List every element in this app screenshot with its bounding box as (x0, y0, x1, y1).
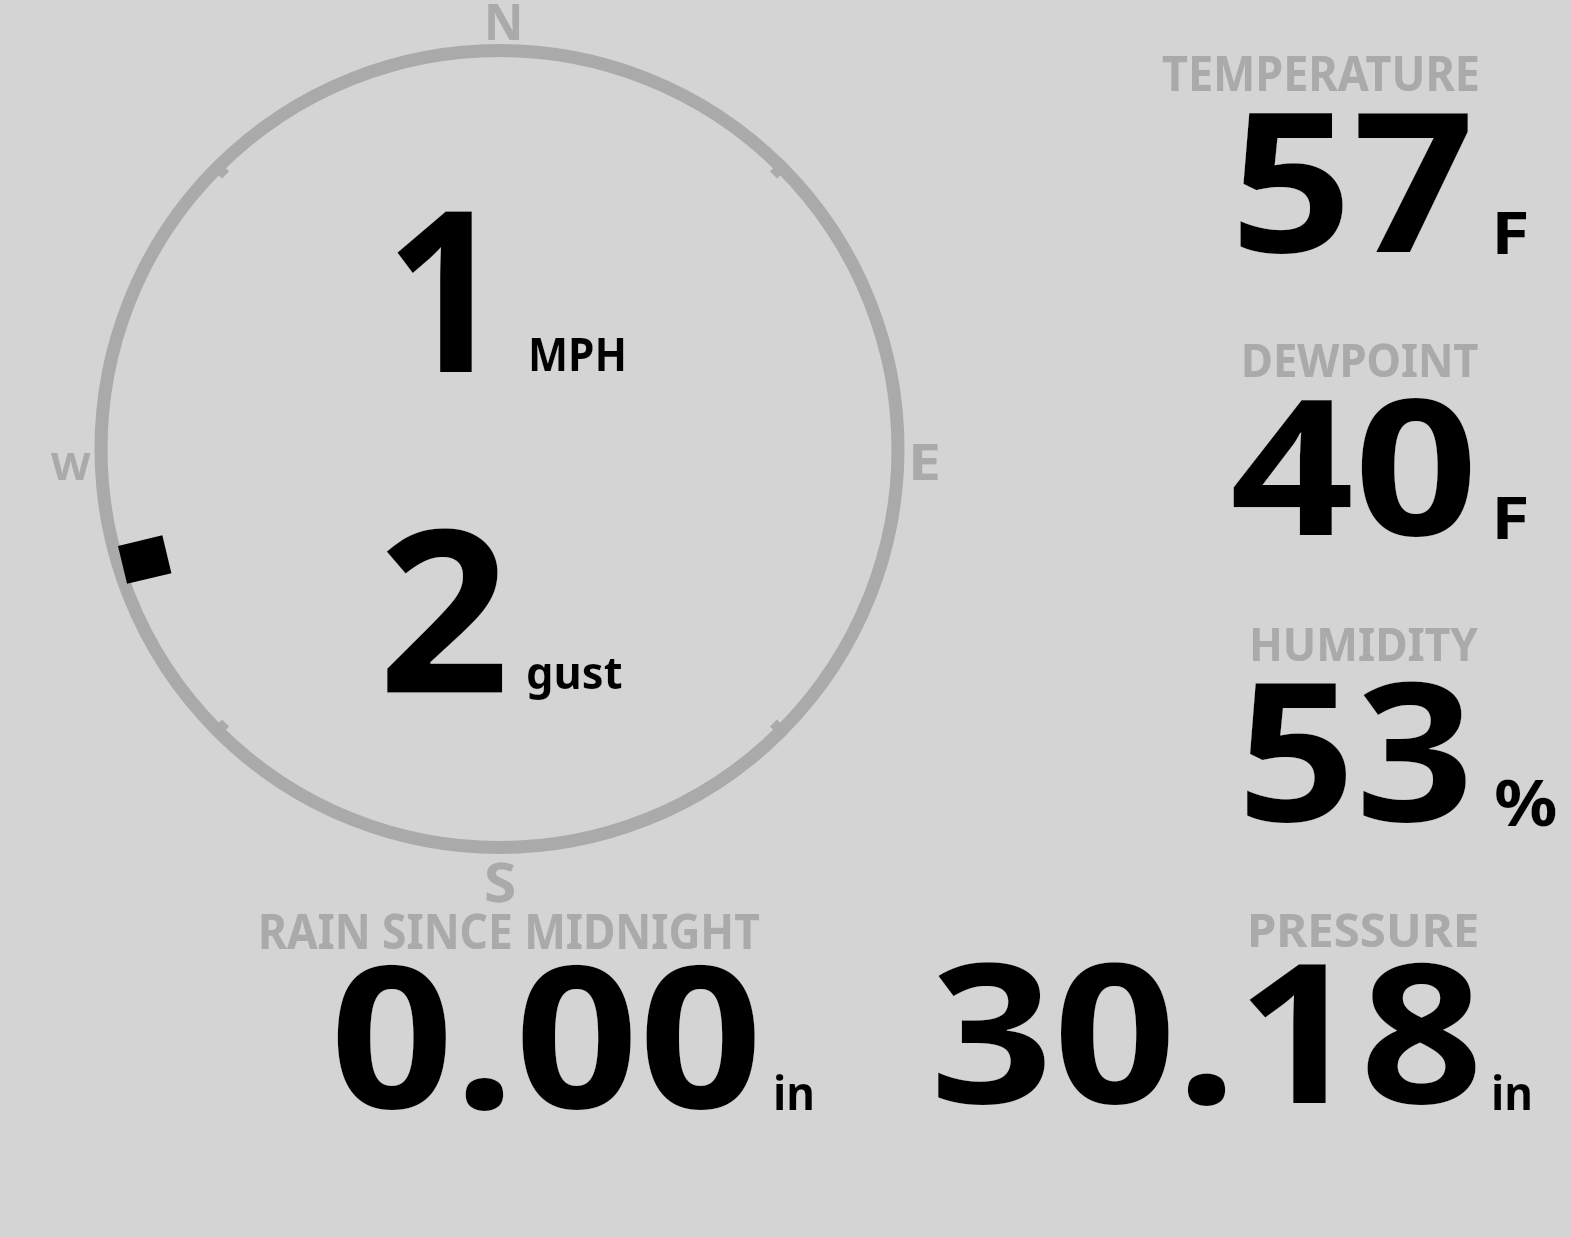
button[interactable]: Dew point 40 F (1100, 315, 1571, 580)
staticText: HUMIDITY (1249, 611, 1479, 675)
staticText: N (484, 0, 524, 55)
staticText: F (1491, 191, 1530, 271)
staticText: 57 (1230, 45, 1475, 309)
staticText: in (1491, 1061, 1533, 1124)
staticText: % (1494, 758, 1558, 845)
button[interactable]: Humidity 53 percent (1100, 600, 1571, 865)
button[interactable]: Wind speed and direction (60, 10, 940, 890)
staticText: 40 (1230, 333, 1479, 590)
staticText: 0.00 (330, 897, 763, 1165)
staticText: PRESSURE (1247, 897, 1479, 961)
staticText: MPH (528, 321, 627, 385)
staticText: W (51, 439, 91, 491)
staticText: 1 (385, 133, 506, 438)
staticText: gust (526, 641, 623, 702)
button[interactable]: Rain since midnight 0.00 in (210, 890, 870, 1130)
staticText: RAIN SINCE MIDNIGHT (258, 896, 760, 963)
staticText: S (484, 844, 516, 918)
staticText: 53 (1237, 615, 1474, 878)
staticText: in (773, 1061, 815, 1124)
staticText: TEMPERATURE (1162, 38, 1480, 105)
staticText: E (908, 427, 941, 495)
staticText: DEWPOINT (1241, 327, 1479, 391)
staticText: 30.18 (930, 896, 1484, 1160)
staticText: F (1491, 476, 1530, 556)
button[interactable]: Pressure 30.18 in (900, 890, 1571, 1130)
staticText: 2 (378, 451, 510, 759)
button[interactable]: Temperature 57 F (1100, 30, 1571, 295)
